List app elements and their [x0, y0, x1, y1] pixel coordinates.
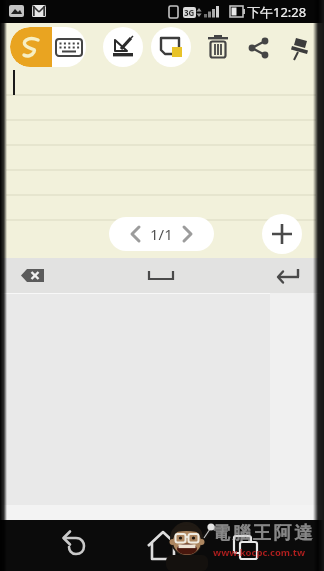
button[interactable]	[120, 217, 150, 251]
button[interactable]	[242, 29, 276, 63]
button[interactable]	[50, 526, 94, 568]
button[interactable]	[10, 27, 52, 67]
staticText: 1/1	[150, 224, 173, 244]
button[interactable]	[151, 27, 191, 67]
button[interactable]	[283, 29, 317, 63]
staticText: 電腦王阿達	[212, 522, 315, 545]
button[interactable]	[52, 27, 86, 67]
button[interactable]	[141, 526, 185, 568]
button[interactable]	[103, 27, 143, 67]
staticText: 3G	[184, 7, 195, 18]
button[interactable]	[173, 217, 203, 251]
button[interactable]	[200, 29, 236, 65]
button[interactable]	[143, 258, 181, 293]
button[interactable]	[224, 526, 268, 568]
button[interactable]	[262, 214, 302, 254]
button[interactable]	[14, 258, 52, 293]
staticText: www.kocpc.com.tw	[213, 546, 306, 559]
button[interactable]	[270, 258, 308, 293]
staticText: 下午12:28	[247, 3, 307, 21]
